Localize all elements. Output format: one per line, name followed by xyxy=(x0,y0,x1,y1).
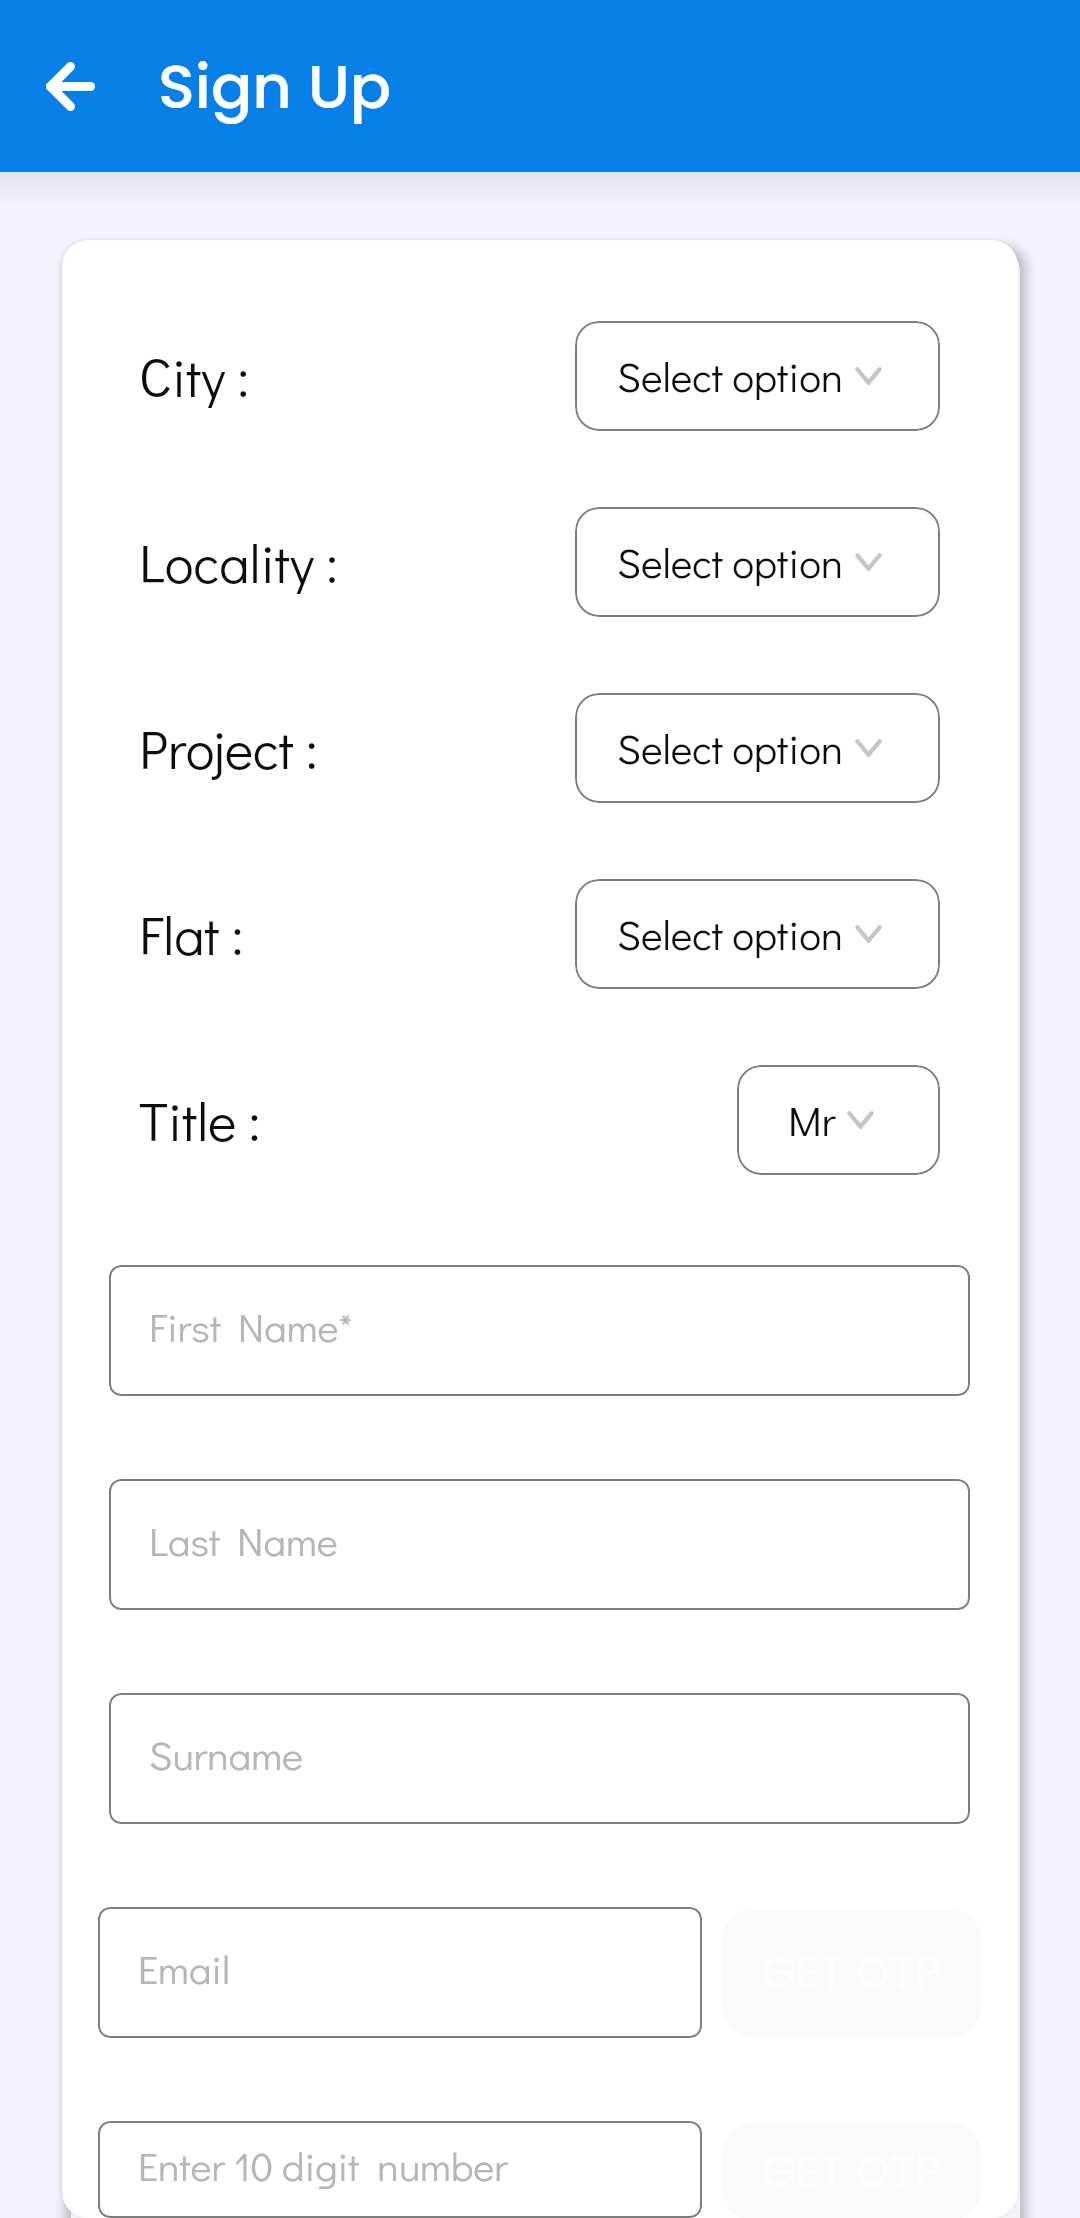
staticText: Select option xyxy=(617,907,844,961)
staticText: Enter 10 digit number xyxy=(138,2139,508,2191)
staticText: Sign Up xyxy=(158,44,392,129)
staticText: Mr xyxy=(788,1093,836,1147)
button[interactable]: Email xyxy=(98,1907,702,2038)
staticText: Select option xyxy=(617,721,844,775)
button[interactable]: Back xyxy=(22,42,118,130)
staticText: Surname xyxy=(149,1728,304,1780)
staticText: Email xyxy=(138,1942,231,1994)
button[interactable]: Last Name xyxy=(109,1479,970,1610)
button[interactable]: Select option xyxy=(575,507,940,617)
staticText: Locality : xyxy=(139,527,338,598)
staticText: Last Name xyxy=(149,1514,338,1566)
staticText: Title : xyxy=(139,1085,261,1156)
staticText: Select option xyxy=(617,349,844,403)
staticText: City : xyxy=(139,341,250,412)
button[interactable]: Mr xyxy=(737,1065,940,1175)
button[interactable]: Surname xyxy=(109,1693,970,1824)
button[interactable]: Select option xyxy=(575,321,940,431)
button[interactable]: First Name* xyxy=(109,1265,970,1396)
staticText: Project : xyxy=(139,713,318,784)
button[interactable]: Enter 10 digit number xyxy=(98,2121,702,2218)
button[interactable]: Select option xyxy=(575,693,940,803)
staticText: Select option xyxy=(617,535,844,589)
button[interactable]: Select option xyxy=(575,879,940,989)
staticText: Flat : xyxy=(139,899,244,970)
staticText: First Name* xyxy=(149,1300,353,1352)
